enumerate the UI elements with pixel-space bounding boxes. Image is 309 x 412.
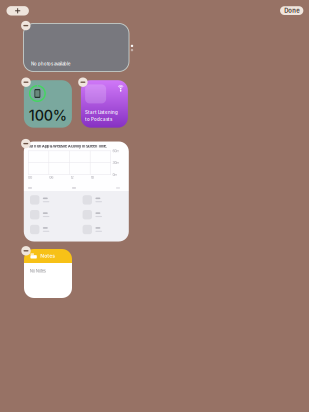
staticText: 0m — [112, 172, 117, 177]
staticText: Start Listening — [85, 110, 118, 115]
button[interactable]: 100% — [24, 80, 72, 128]
button[interactable]: Remove widget — [21, 77, 31, 87]
button[interactable]: Remove widget — [78, 77, 88, 87]
staticText: 30m — [112, 160, 119, 165]
button[interactable]: Start Listening — [81, 80, 128, 128]
button[interactable]: Notes — [24, 249, 72, 298]
button[interactable]: No photos available — [23, 23, 129, 71]
button[interactable]: Remove widget — [21, 21, 30, 30]
staticText: Done — [284, 7, 299, 14]
staticText: Notes — [40, 253, 55, 259]
button[interactable]: Remove widget — [21, 246, 31, 255]
staticText: 12 — [70, 175, 73, 180]
staticText: 06 — [49, 175, 53, 180]
staticText: 18 — [91, 175, 94, 180]
button[interactable]: Remove widget — [21, 139, 30, 148]
staticText: No Notes — [30, 269, 46, 274]
staticText: 100% — [29, 107, 67, 124]
staticText: to Podcasts — [85, 117, 112, 122]
staticText: 60m — [112, 149, 119, 153]
button[interactable]: Done — [280, 6, 303, 15]
staticText: 00 — [28, 175, 32, 180]
staticText: Turn on App & Website Activity in Screen… — [28, 144, 107, 148]
button[interactable]: Add widget — [6, 6, 29, 15]
staticText: No photos available — [31, 61, 71, 66]
